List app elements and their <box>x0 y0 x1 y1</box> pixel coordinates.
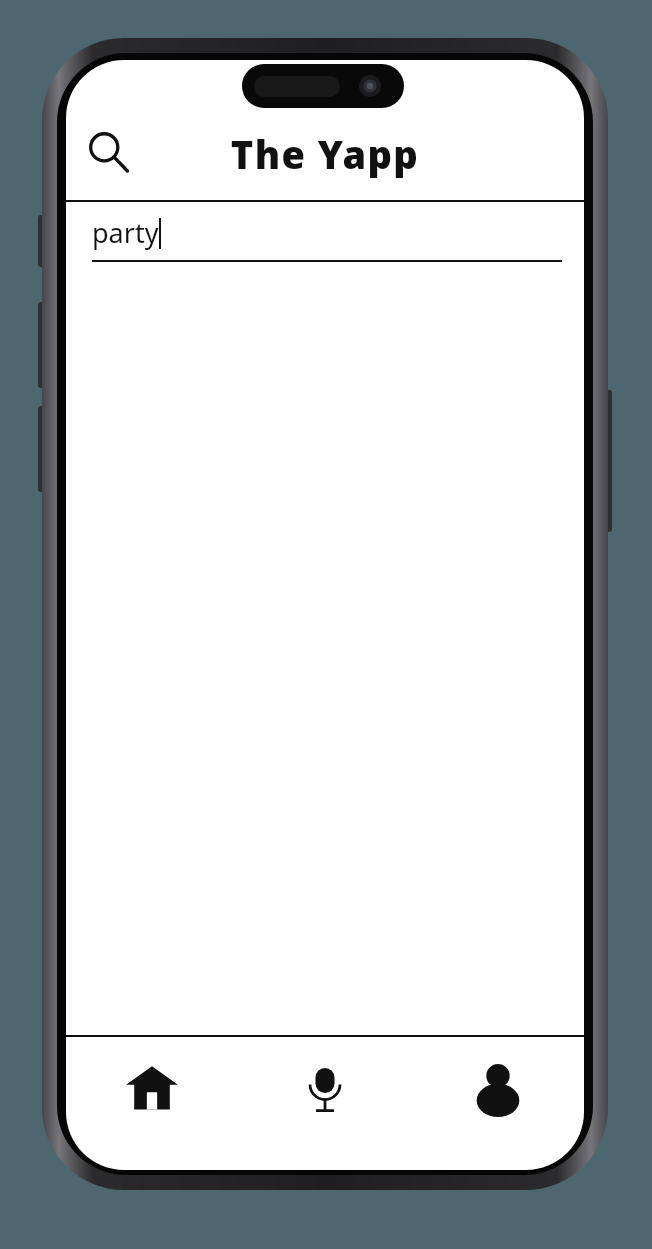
button[interactable]: Search <box>84 128 136 180</box>
button[interactable]: Home <box>66 1037 238 1141</box>
button[interactable]: Profile <box>411 1037 584 1141</box>
button[interactable]: Voice search <box>238 1037 411 1141</box>
staticText: party <box>92 214 159 251</box>
button[interactable]: party <box>92 212 562 262</box>
staticText: The Yapp <box>66 128 584 180</box>
